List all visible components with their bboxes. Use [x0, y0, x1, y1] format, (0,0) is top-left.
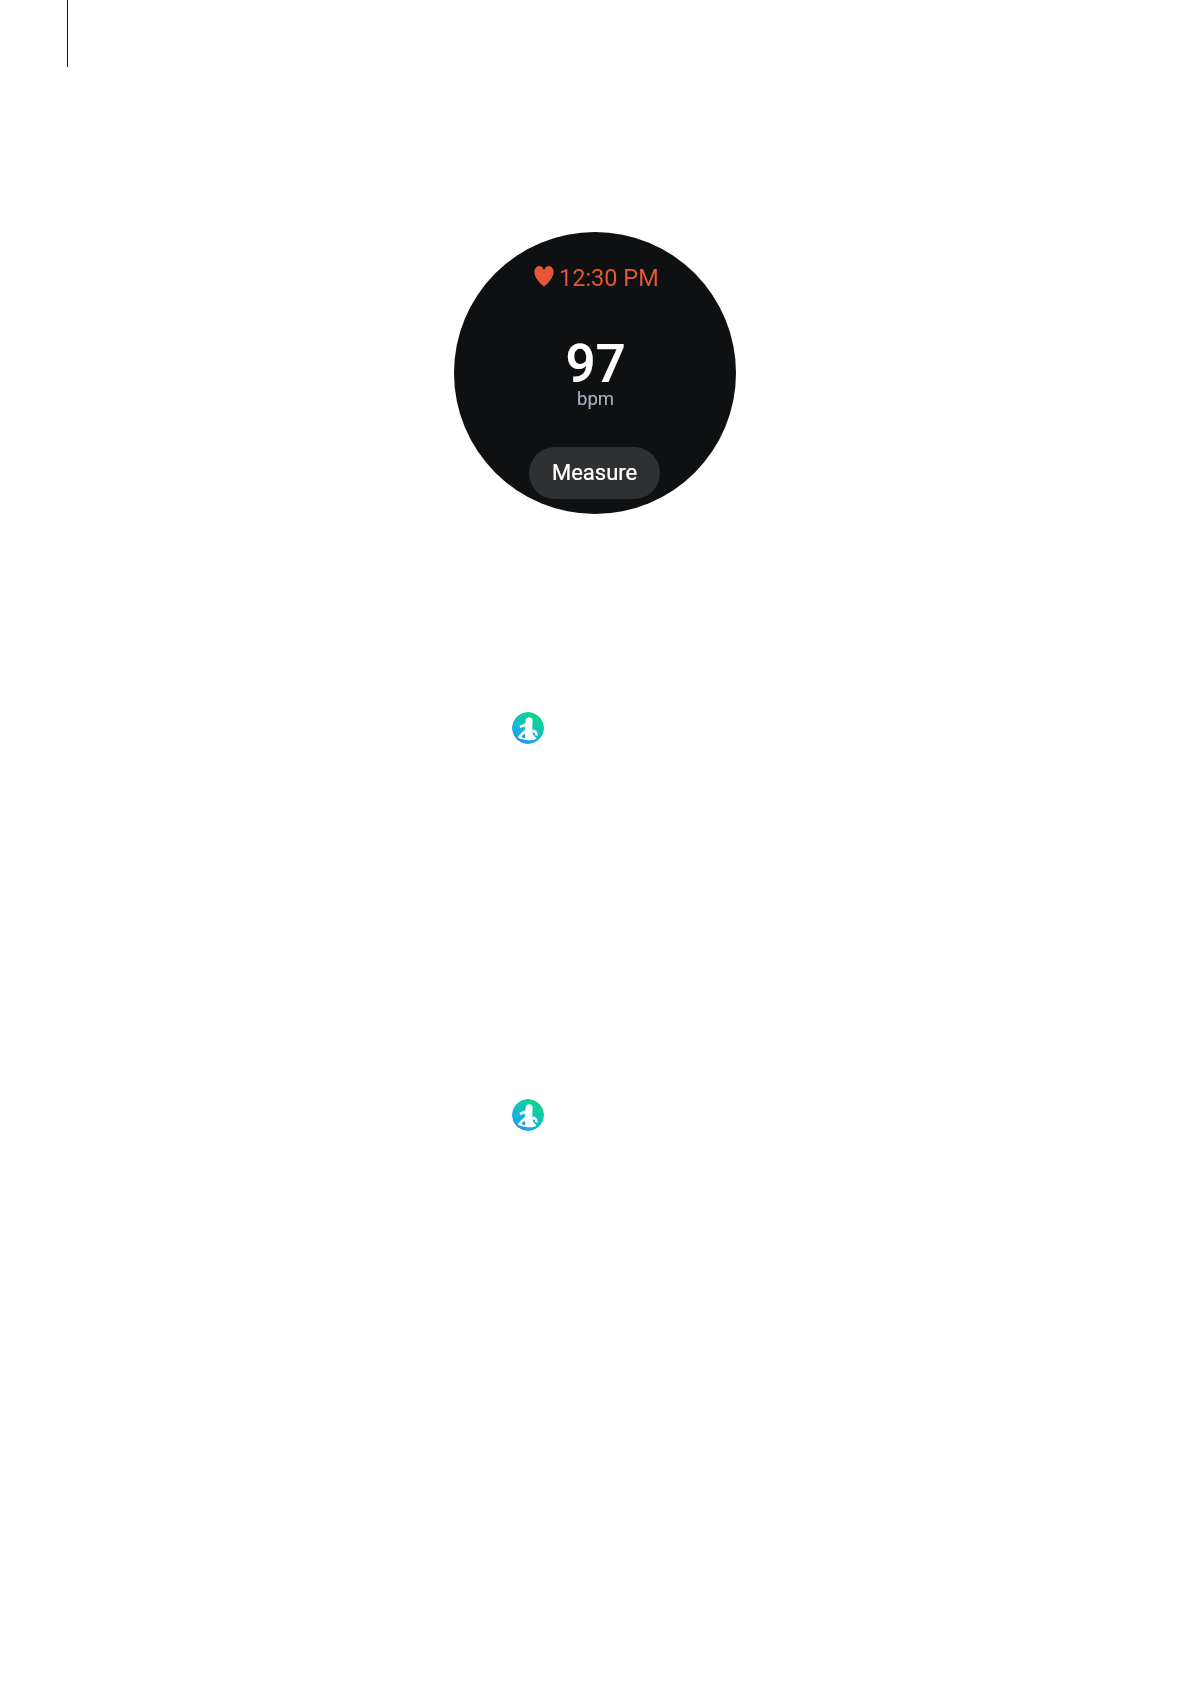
- staticText: bpm: [577, 388, 614, 410]
- button[interactable]: Health & fitness app: [512, 712, 544, 744]
- staticText: 97: [565, 333, 626, 395]
- staticText: 12:30 PM: [559, 264, 659, 292]
- other: Heart rate: [533, 264, 555, 289]
- staticText: Measure: [552, 460, 638, 486]
- button[interactable]: Health & fitness app: [512, 1099, 544, 1131]
- button[interactable]: Measure: [529, 447, 660, 499]
